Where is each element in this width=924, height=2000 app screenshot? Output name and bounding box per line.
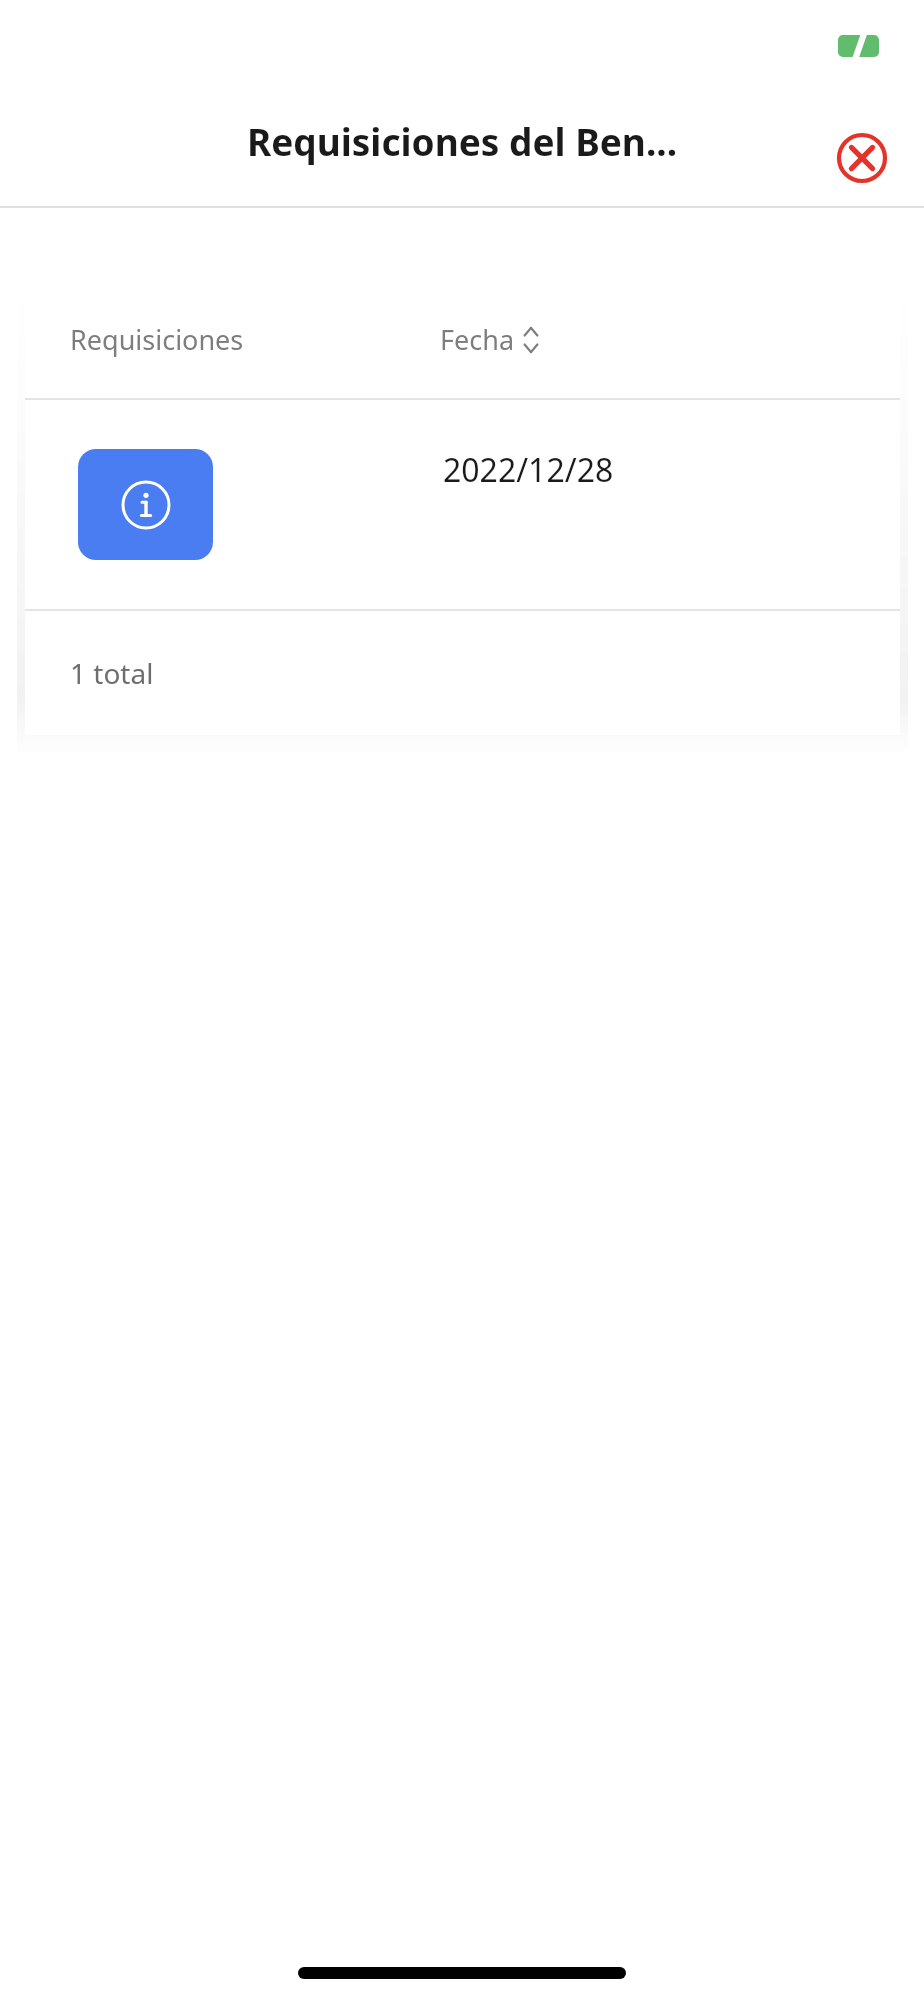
button[interactable]: Información: [25, 400, 900, 609]
staticText: Fecha: [440, 321, 515, 358]
button[interactable]: Close: [834, 130, 890, 186]
button[interactable]: Fecha: [440, 321, 539, 358]
button[interactable]: Información: [78, 449, 213, 560]
staticText: 2022/12/28: [443, 448, 614, 492]
other: Charging: [838, 35, 879, 57]
staticText: Requisiciones: [70, 321, 244, 358]
staticText: 1 total: [70, 654, 154, 692]
staticText: Requisiciones del Ben...: [0, 116, 924, 166]
